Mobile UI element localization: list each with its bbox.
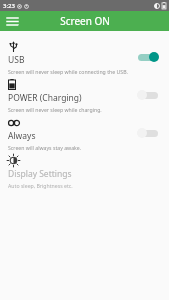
button[interactable]: Open navigation menu [4, 13, 20, 29]
button[interactable]: POWER (Charging) toggle [133, 85, 163, 105]
button[interactable]: USB [0, 38, 169, 76]
staticText: Screen will always stay awake. [8, 144, 82, 151]
button[interactable]: USB toggle [133, 47, 163, 67]
button[interactable]: Display Settings [0, 152, 169, 190]
button[interactable]: Always [0, 114, 169, 152]
staticText: Screen will never sleep while connecting… [8, 68, 128, 75]
staticText: Screen will never sleep while charging. [8, 106, 102, 113]
staticText: 3:23 [3, 2, 15, 10]
button[interactable]: POWER (Charging) [0, 76, 169, 114]
staticText: Auto sleep, Brightness etc. [8, 182, 73, 189]
button[interactable]: Always toggle [133, 123, 163, 143]
staticText: POWER (Charging) [8, 92, 82, 104]
staticText: Display Settings [8, 168, 72, 180]
staticText: Always [8, 130, 36, 142]
staticText: Screen ON [60, 14, 110, 28]
staticText: USB [8, 54, 25, 66]
